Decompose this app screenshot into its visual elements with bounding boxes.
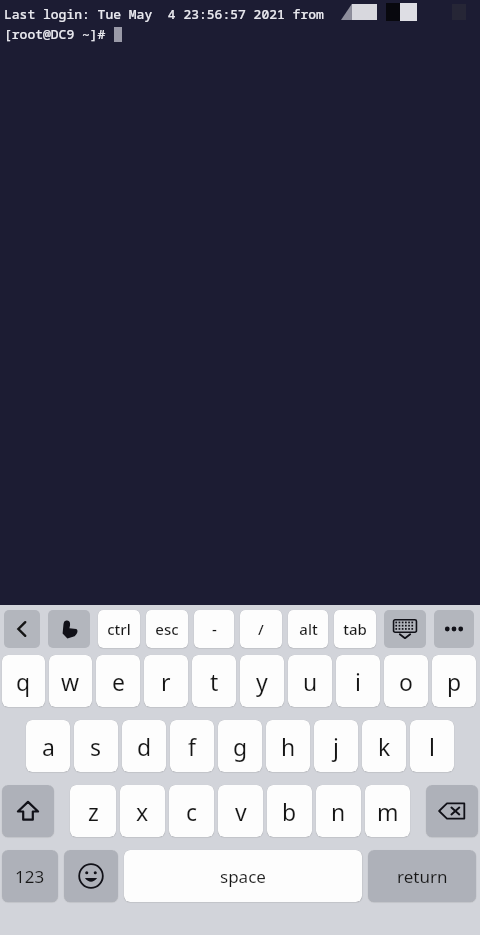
staticText: t [210, 666, 219, 697]
staticText: e [112, 666, 125, 697]
button[interactable]: e [96, 655, 140, 707]
button[interactable]: q [2, 655, 45, 707]
staticText: a [42, 731, 55, 762]
button[interactable]: Backspace [426, 785, 478, 837]
staticText: c [186, 796, 198, 827]
staticText: tab [343, 619, 367, 639]
button[interactable]: j [314, 720, 358, 772]
staticText: l [429, 731, 435, 762]
button[interactable]: ctrl [98, 610, 140, 648]
staticText: f [188, 731, 196, 762]
button[interactable]: More options [434, 610, 474, 648]
staticText: p [447, 666, 462, 697]
button[interactable]: u [288, 655, 332, 707]
button[interactable]: Emoji [64, 850, 118, 902]
staticText: d [137, 731, 152, 762]
staticText: esc [155, 619, 179, 639]
button[interactable]: g [218, 720, 262, 772]
button[interactable]: r [144, 655, 188, 707]
staticText: g [233, 731, 248, 762]
button[interactable]: n [316, 785, 361, 837]
button[interactable]: o [384, 655, 428, 707]
button[interactable]: f [170, 720, 214, 772]
button[interactable]: i [336, 655, 380, 707]
button[interactable]: t [192, 655, 236, 707]
staticText: - [212, 619, 217, 639]
button[interactable]: v [218, 785, 263, 837]
button[interactable]: c [169, 785, 214, 837]
staticText: s [90, 731, 102, 762]
button[interactable]: alt [288, 610, 328, 648]
button[interactable]: / [240, 610, 282, 648]
staticText: q [16, 666, 31, 697]
staticText: / [258, 619, 264, 639]
button[interactable]: d [122, 720, 166, 772]
button[interactable]: l [410, 720, 454, 772]
staticText: return [397, 865, 448, 888]
staticText: h [281, 731, 296, 762]
button[interactable]: 123 [2, 850, 58, 902]
staticText: [root@DC9 ~]# [4, 25, 114, 43]
staticText: 123 [15, 865, 45, 888]
staticText: w [61, 666, 80, 697]
button[interactable]: Touch pointer [48, 610, 90, 648]
button[interactable]: Shift [2, 785, 54, 837]
staticText: o [399, 666, 413, 697]
staticText: alt [299, 619, 318, 639]
staticText: space [220, 865, 266, 888]
button[interactable]: m [365, 785, 410, 837]
staticText: y [256, 666, 268, 697]
button[interactable]: w [49, 655, 92, 707]
button[interactable]: return [368, 850, 476, 902]
button[interactable]: tab [334, 610, 376, 648]
button[interactable]: p [432, 655, 476, 707]
staticText: b [282, 796, 297, 827]
button[interactable]: k [362, 720, 406, 772]
staticText: m [377, 796, 399, 827]
button[interactable]: z [70, 785, 116, 837]
staticText: k [378, 731, 391, 762]
staticText: u [303, 666, 318, 697]
staticText: Last login: Tue May 4 23:56:57 2021 from [4, 5, 332, 23]
button[interactable]: y [240, 655, 284, 707]
staticText: j [333, 731, 339, 762]
button[interactable]: space [124, 850, 362, 902]
button[interactable]: esc [146, 610, 188, 648]
staticText: z [88, 796, 99, 827]
button[interactable]: - [194, 610, 234, 648]
button[interactable]: Back [4, 610, 40, 648]
button[interactable]: h [266, 720, 310, 772]
button[interactable]: b [267, 785, 312, 837]
staticText: r [161, 666, 171, 697]
button[interactable]: x [120, 785, 165, 837]
staticText: i [355, 666, 361, 697]
staticText: v [235, 796, 247, 827]
button[interactable]: Hide keyboard [384, 610, 426, 648]
staticText: x [136, 796, 149, 827]
button[interactable]: a [26, 720, 70, 772]
staticText: n [331, 796, 346, 827]
staticText: ctrl [107, 619, 131, 639]
button[interactable]: s [74, 720, 118, 772]
